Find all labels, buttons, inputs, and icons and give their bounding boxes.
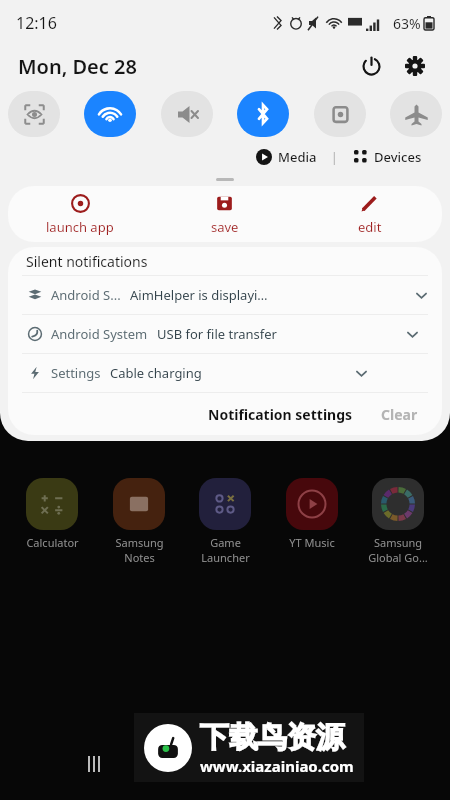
staticText: Game Launcher bbox=[201, 535, 250, 565]
button[interactable]: YT Music bbox=[270, 478, 354, 550]
button[interactable]: Wi-Fi bbox=[84, 91, 136, 137]
button[interactable]: Settings bbox=[396, 47, 434, 85]
button[interactable]: save bbox=[152, 186, 297, 242]
staticText: Samsung Notes bbox=[115, 535, 164, 565]
staticText: Android S... bbox=[51, 286, 121, 304]
staticText: 63% bbox=[393, 14, 421, 33]
staticText: Devices bbox=[374, 148, 422, 166]
staticText: edit bbox=[358, 218, 382, 236]
button[interactable]: Auto rotate bbox=[314, 91, 366, 137]
button[interactable]: Settings bbox=[8, 354, 442, 392]
button[interactable]: Mute bbox=[161, 91, 213, 137]
button[interactable]: Bluetooth bbox=[237, 91, 289, 137]
staticText: Cable charging bbox=[110, 364, 202, 382]
button[interactable]: Android System bbox=[8, 315, 442, 353]
button[interactable]: Samsung Notes bbox=[97, 478, 181, 565]
staticText: Mon, Dec 28 bbox=[18, 53, 137, 80]
button[interactable]: Game Launcher bbox=[183, 478, 267, 565]
staticText: launch app bbox=[46, 218, 114, 236]
staticText: Calculator bbox=[26, 535, 79, 550]
button[interactable]: Eye comfort shield bbox=[8, 91, 60, 137]
button[interactable]: launch app bbox=[8, 186, 152, 242]
staticText: www.xiazainiao.com bbox=[200, 756, 354, 776]
staticText: Samsung Global Go... bbox=[368, 535, 428, 565]
button[interactable]: Power bbox=[352, 47, 390, 85]
button[interactable]: Samsung Global Go... bbox=[356, 478, 440, 565]
staticText: AimHelper is displaying over other a... bbox=[130, 286, 272, 304]
staticText: Settings bbox=[51, 364, 101, 382]
button[interactable]: Android S... bbox=[8, 276, 442, 314]
button[interactable]: Flight mode bbox=[390, 91, 442, 137]
staticText: | bbox=[331, 149, 338, 165]
button[interactable]: Clear bbox=[375, 399, 424, 430]
staticText: 12:16 bbox=[16, 12, 57, 34]
staticText: Silent notifications bbox=[26, 252, 148, 271]
button[interactable]: Devices bbox=[350, 146, 426, 168]
button[interactable]: Notification settings bbox=[202, 399, 359, 430]
staticText: Media bbox=[278, 148, 317, 166]
staticText: 下载鸟资源 bbox=[200, 719, 345, 756]
staticText: YT Music bbox=[289, 535, 335, 550]
staticText: USB for file transfer bbox=[157, 325, 277, 343]
staticText: Notification settings bbox=[208, 405, 353, 424]
button[interactable]: Calculator bbox=[10, 478, 94, 550]
staticText: Android System bbox=[51, 325, 148, 343]
button[interactable]: edit bbox=[297, 186, 442, 242]
staticText: Clear bbox=[381, 405, 418, 424]
staticText: save bbox=[211, 218, 239, 236]
button[interactable]: Media bbox=[252, 146, 321, 168]
